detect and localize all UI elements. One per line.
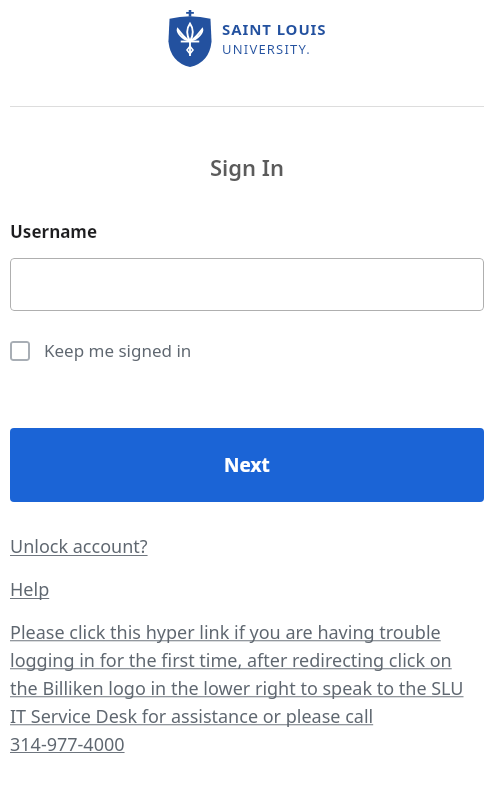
- staticText: Next: [224, 452, 270, 478]
- staticText: Keep me signed in: [44, 339, 192, 362]
- button[interactable]: Next: [10, 428, 484, 502]
- button[interactable]: Please click this hyper link if you are …: [10, 620, 484, 756]
- staticText: Please click this hyper link if you are …: [10, 620, 484, 756]
- staticText: Sign In: [0, 152, 494, 182]
- button[interactable]: Unlock account?: [10, 534, 148, 559]
- staticText: Help: [10, 577, 50, 602]
- button[interactable]: Username input field: [10, 258, 484, 311]
- staticText: UNIVERSITY.: [222, 40, 311, 58]
- staticText: SAINT LOUIS: [222, 19, 327, 39]
- button[interactable]: Keep me signed in: [10, 339, 192, 362]
- staticText: Unlock account?: [10, 534, 148, 559]
- staticText: Username: [10, 220, 98, 243]
- button[interactable]: Help: [10, 577, 50, 602]
